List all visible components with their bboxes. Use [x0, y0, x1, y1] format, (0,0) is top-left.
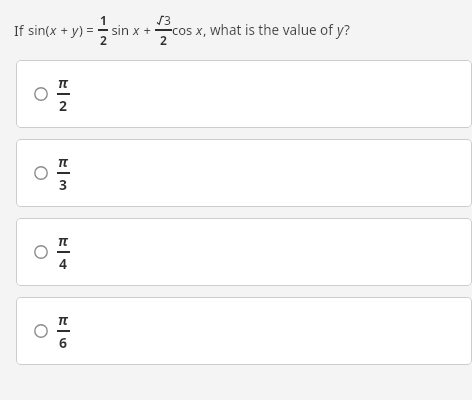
staticText: π — [58, 73, 69, 92]
button[interactable]: Select pi over 2 — [16, 60, 472, 128]
staticText: what is the value of — [210, 21, 337, 39]
button[interactable]: Select pi over 3 — [16, 139, 472, 207]
staticText: ) = — [79, 21, 98, 39]
other: Select pi over 6 — [34, 324, 48, 338]
staticText: 2 — [160, 32, 167, 48]
staticText: ? — [344, 21, 350, 39]
button[interactable]: Select pi over 4 — [16, 218, 472, 286]
staticText: y — [72, 21, 79, 39]
other: Select pi over 4 — [34, 245, 48, 259]
staticText: x — [196, 21, 203, 39]
other: Select pi over 3 — [34, 166, 48, 180]
staticText: π — [58, 152, 69, 171]
staticText: 2 — [59, 96, 68, 115]
staticText: 3 — [164, 12, 171, 28]
staticText: x — [50, 21, 57, 39]
staticText: cos — [172, 21, 196, 39]
staticText: + — [57, 21, 72, 39]
staticText: 2 — [100, 32, 107, 48]
staticText: , — [203, 21, 210, 39]
staticText: If — [14, 21, 28, 40]
staticText: sin — [108, 21, 133, 39]
staticText: 6 — [59, 333, 68, 352]
staticText: 3 — [59, 175, 68, 194]
button[interactable]: Select pi over 6 — [16, 297, 472, 365]
staticText: π — [58, 310, 69, 329]
staticText: x — [133, 21, 140, 39]
staticText: 1 — [100, 12, 107, 28]
staticText: sin( — [28, 21, 50, 39]
staticText: + — [140, 21, 155, 39]
other: Select pi over 2 — [34, 87, 48, 101]
staticText: π — [58, 231, 69, 250]
staticText: 4 — [59, 254, 68, 273]
staticText: y — [337, 21, 344, 39]
